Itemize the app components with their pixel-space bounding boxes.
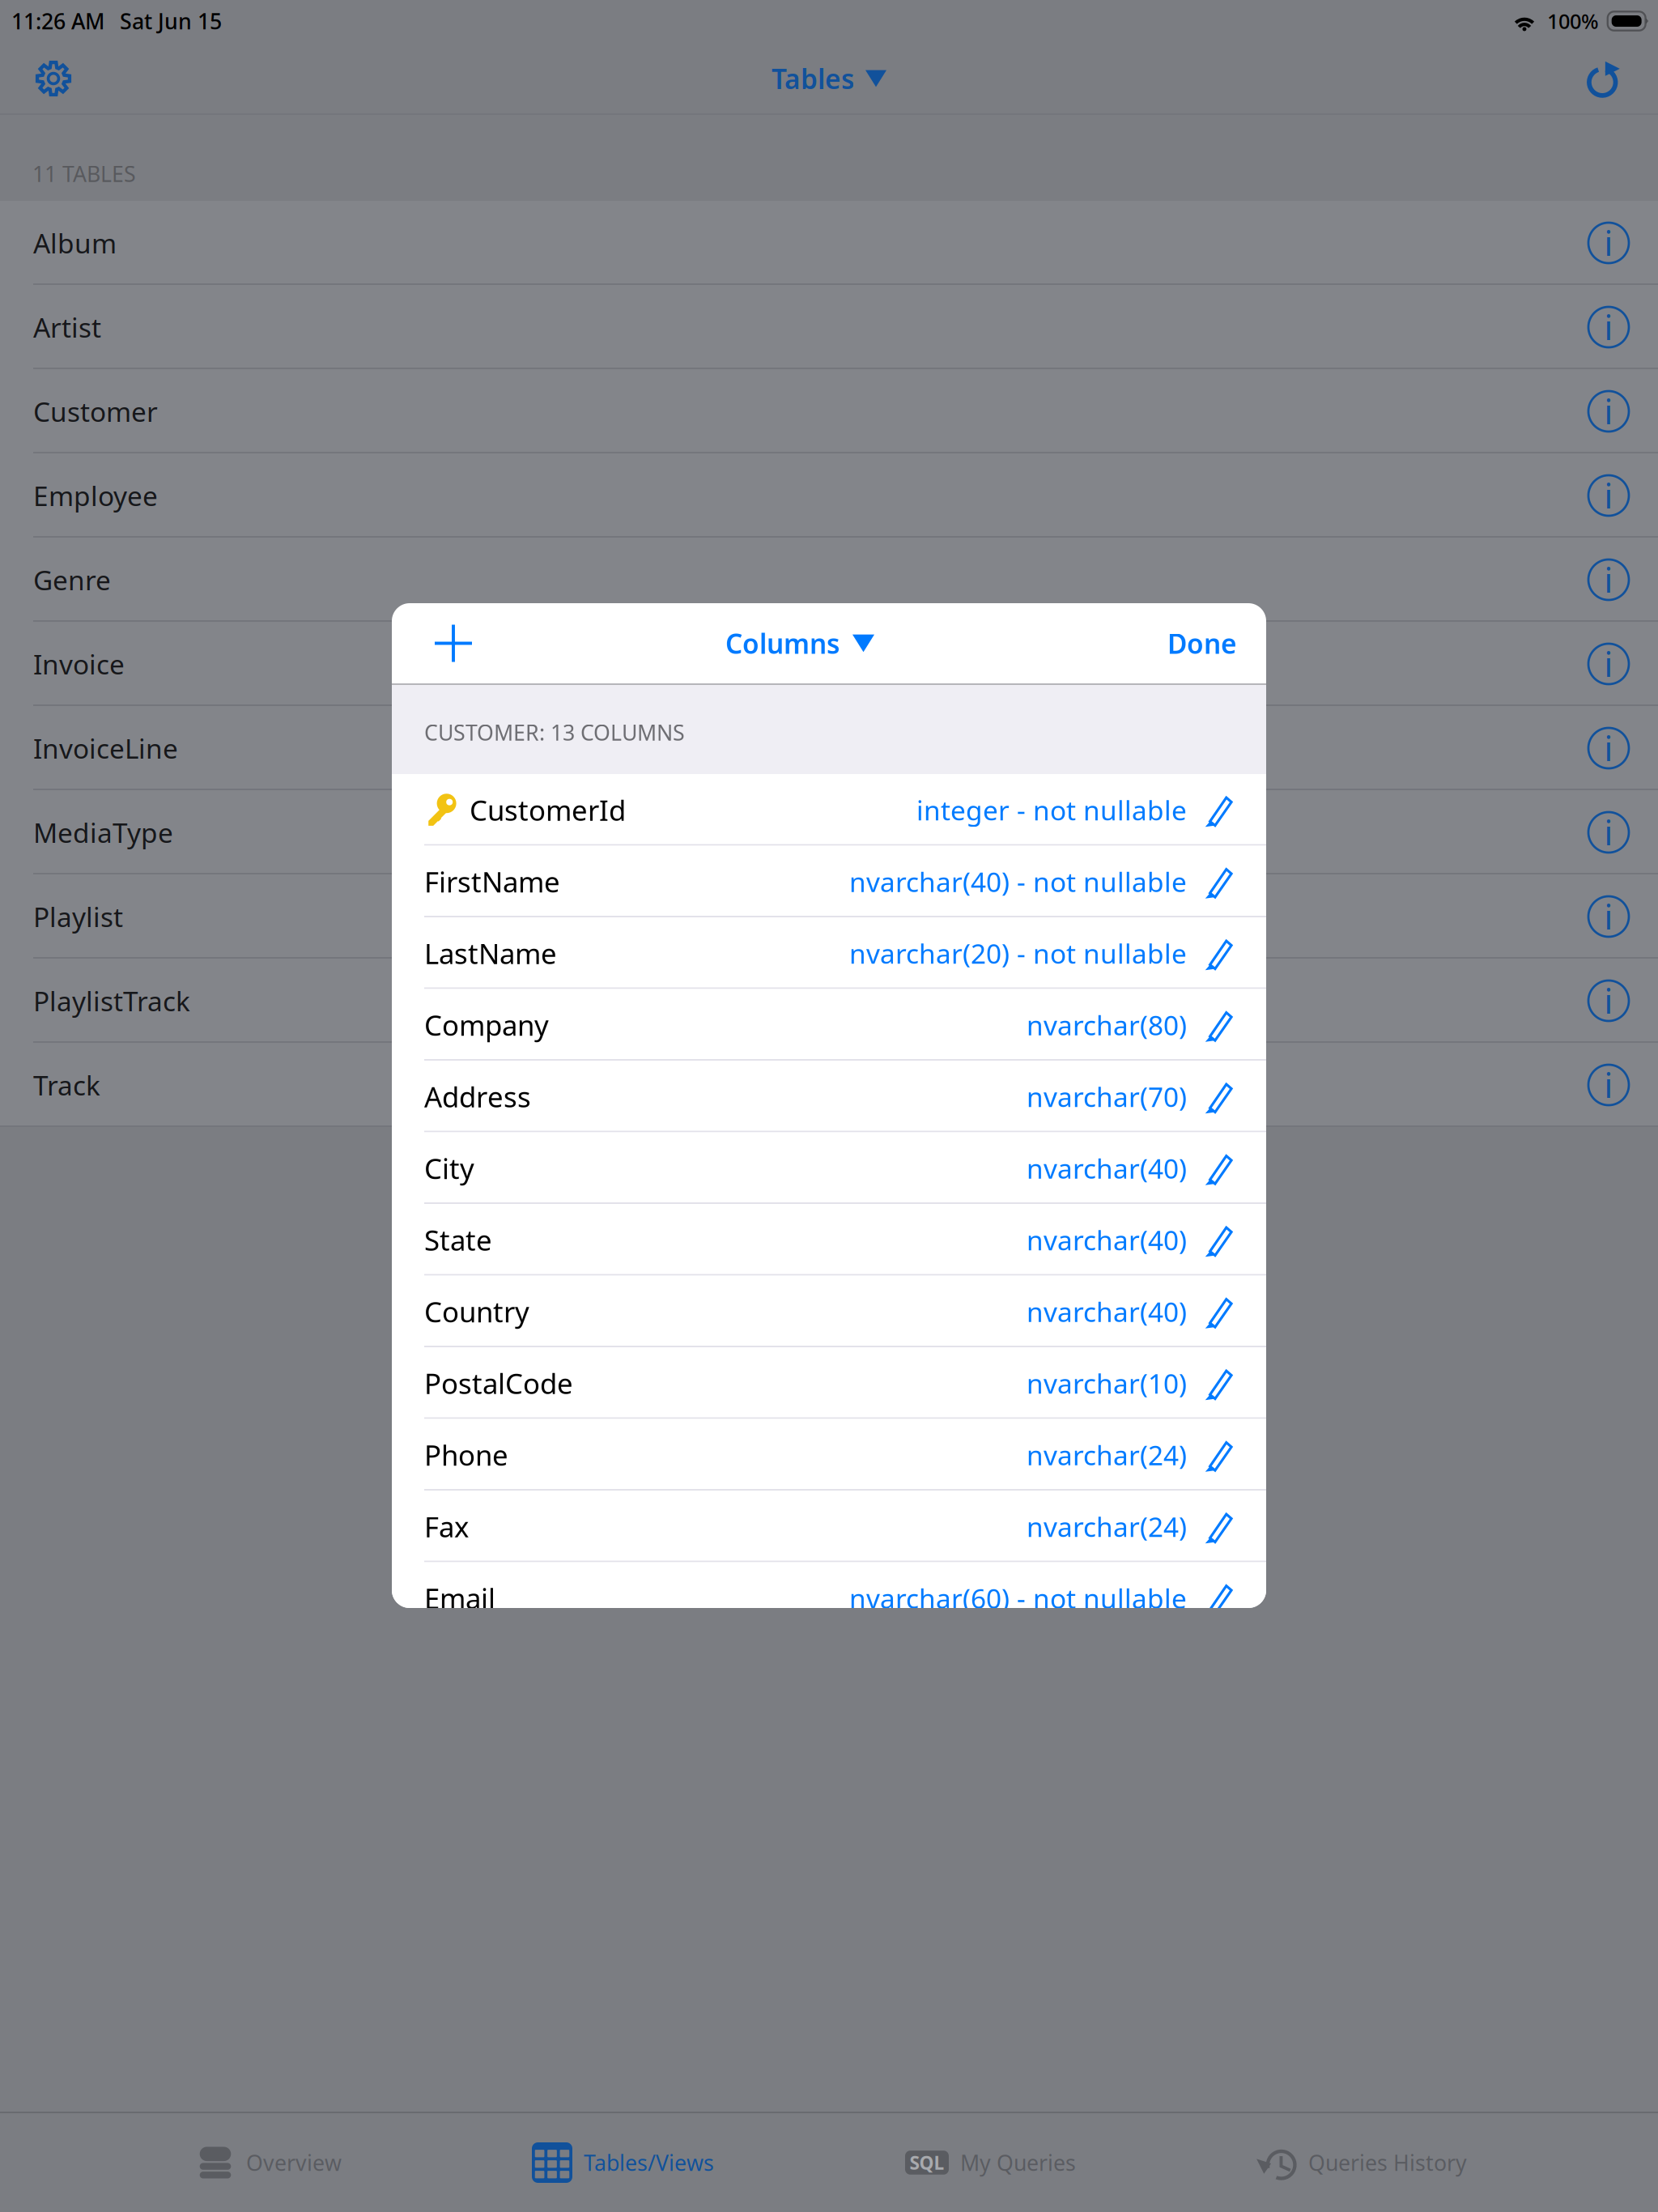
- staticText: City: [424, 1149, 474, 1187]
- button[interactable]: PostalCode: [392, 1347, 1266, 1419]
- staticText: State: [424, 1221, 492, 1258]
- button[interactable]: Columns: [725, 603, 874, 683]
- staticText: SQL: [910, 2150, 944, 2175]
- staticText: FirstName: [424, 863, 560, 900]
- staticText: LastName: [424, 935, 557, 972]
- staticText: Country: [424, 1293, 529, 1330]
- button[interactable]: FirstName: [392, 846, 1266, 917]
- staticText: nvarchar(24): [1027, 1437, 1187, 1473]
- staticText: nvarchar(40): [1027, 1222, 1187, 1258]
- staticText: nvarchar(24): [1027, 1508, 1187, 1544]
- staticText: nvarchar(10): [1027, 1365, 1187, 1401]
- button[interactable]: Tables/Views: [532, 2113, 775, 2212]
- staticText: Playlist: [33, 899, 123, 935]
- staticText: Artist: [33, 309, 101, 345]
- staticText: i: [1604, 1063, 1613, 1107]
- staticText: nvarchar(40): [1027, 1150, 1187, 1186]
- staticText: Overview: [246, 2148, 342, 2177]
- button[interactable]: LastName: [392, 917, 1266, 989]
- staticText: Track: [33, 1067, 100, 1103]
- staticText: Sat Jun 15: [120, 7, 222, 35]
- staticText: nvarchar(40): [1027, 1294, 1187, 1329]
- staticText: nvarchar(60) - not nullable: [849, 1580, 1187, 1616]
- button[interactable]: Overview: [198, 2113, 441, 2212]
- button[interactable]: SQL: [905, 2113, 1148, 2212]
- button[interactable]: Settings: [18, 43, 89, 114]
- staticText: nvarchar(20) - not nullable: [849, 935, 1187, 971]
- button[interactable]: Queries History: [1260, 2113, 1503, 2212]
- button[interactable]: Customer: [0, 369, 1658, 453]
- button[interactable]: Country: [392, 1276, 1266, 1347]
- button[interactable]: City: [392, 1132, 1266, 1204]
- staticText: 11:26 AM: [11, 7, 104, 35]
- button[interactable]: Track: [0, 1043, 1658, 1127]
- staticText: Phone: [424, 1436, 508, 1473]
- staticText: MediaType: [33, 814, 173, 850]
- staticText: Address: [424, 1078, 531, 1115]
- staticText: PostalCode: [424, 1364, 573, 1402]
- staticText: integer - not nullable: [916, 792, 1187, 828]
- staticText: Done: [1167, 625, 1237, 661]
- staticText: Genre: [33, 562, 111, 598]
- staticText: i: [1604, 305, 1613, 349]
- button[interactable]: State: [392, 1204, 1266, 1276]
- staticText: 11 TABLES: [32, 159, 136, 188]
- staticText: PlaylistTrack: [33, 983, 190, 1019]
- button[interactable]: Done: [1107, 603, 1237, 683]
- button[interactable]: Address: [392, 1061, 1266, 1132]
- staticText: i: [1604, 558, 1613, 602]
- staticText: i: [1604, 726, 1613, 770]
- button[interactable]: Email: [392, 1562, 1266, 1634]
- staticText: CustomerId: [470, 791, 626, 828]
- button[interactable]: Invoice: [0, 622, 1658, 706]
- button[interactable]: InvoiceLine: [0, 706, 1658, 790]
- button[interactable]: Add column: [414, 603, 492, 683]
- staticText: My Queries: [960, 2148, 1076, 2177]
- button[interactable]: Refresh: [1569, 43, 1640, 114]
- staticText: nvarchar(40) - not nullable: [849, 864, 1187, 899]
- button[interactable]: Artist: [0, 285, 1658, 369]
- staticText: Customer: [33, 393, 158, 429]
- button[interactable]: Genre: [0, 538, 1658, 622]
- button[interactable]: Playlist: [0, 874, 1658, 959]
- button[interactable]: Tables: [759, 43, 899, 114]
- staticText: i: [1604, 810, 1613, 855]
- staticText: nvarchar(80): [1027, 1007, 1187, 1043]
- staticText: i: [1604, 979, 1613, 1023]
- staticText: Columns: [725, 625, 840, 661]
- button[interactable]: MediaType: [0, 790, 1658, 874]
- staticText: i: [1604, 642, 1613, 686]
- button[interactable]: Fax: [392, 1491, 1266, 1562]
- button[interactable]: Employee: [0, 453, 1658, 538]
- button[interactable]: Company: [392, 989, 1266, 1061]
- staticText: nvarchar(70): [1027, 1079, 1187, 1114]
- staticText: i: [1604, 894, 1613, 939]
- staticText: i: [1604, 473, 1613, 518]
- staticText: Employee: [33, 478, 158, 513]
- staticText: i: [1604, 389, 1613, 434]
- staticText: Fax: [424, 1508, 469, 1545]
- staticText: Queries History: [1308, 2148, 1467, 2177]
- button[interactable]: Phone: [392, 1419, 1266, 1491]
- staticText: Invoice: [33, 646, 125, 682]
- staticText: Tables: [772, 61, 854, 97]
- button[interactable]: PlaylistTrack: [0, 959, 1658, 1043]
- staticText: Album: [33, 225, 117, 261]
- staticText: Tables/Views: [584, 2148, 714, 2177]
- staticText: 100%: [1547, 7, 1599, 35]
- staticText: CUSTOMER: 13 COLUMNS: [424, 718, 685, 747]
- staticText: InvoiceLine: [33, 730, 178, 766]
- button[interactable]: CustomerId: [392, 774, 1266, 846]
- staticText: Company: [424, 1006, 549, 1043]
- staticText: i: [1604, 221, 1613, 265]
- button[interactable]: Album: [0, 201, 1658, 285]
- staticText: Email: [424, 1579, 495, 1617]
